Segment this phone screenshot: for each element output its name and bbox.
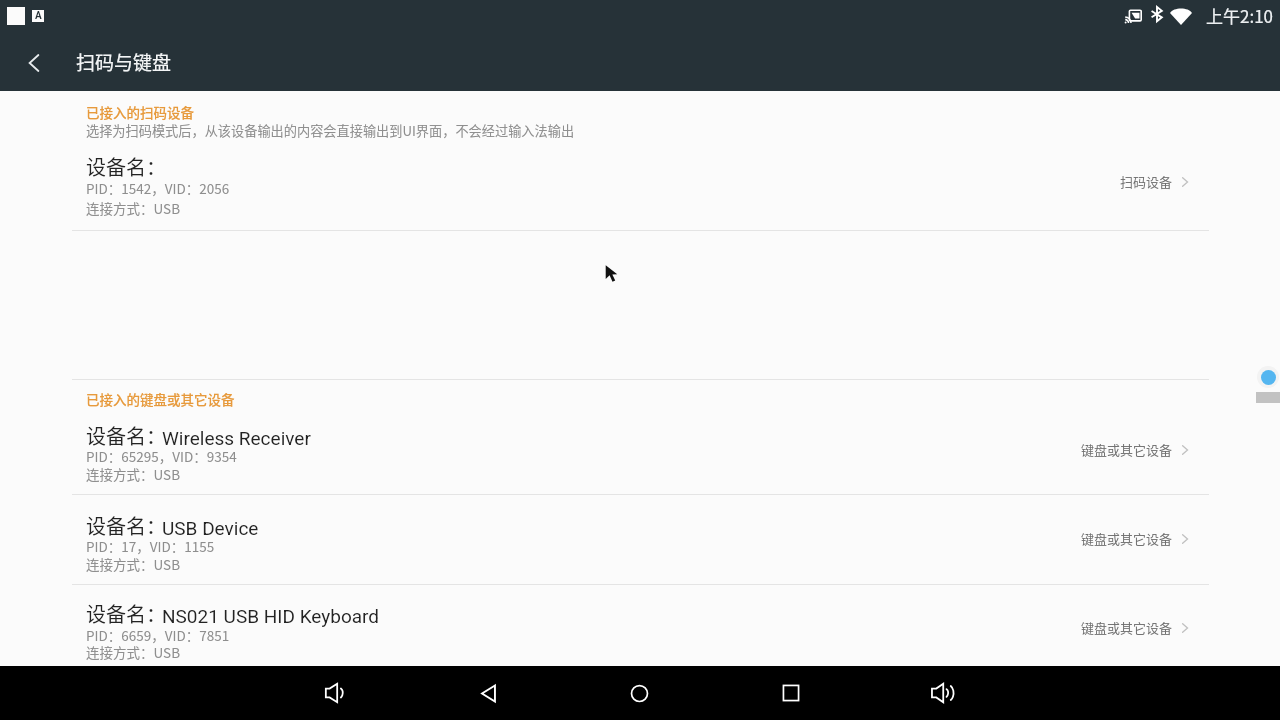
staticText: 扫码与键盘 bbox=[76, 48, 172, 76]
staticText: PID：1542，VID：2056 bbox=[86, 178, 230, 198]
staticText: 扫码设备 bbox=[1120, 172, 1173, 191]
staticText: USB Device bbox=[162, 517, 259, 539]
button[interactable]: 键盘或其它设备 bbox=[1081, 529, 1192, 548]
staticText: 连接方式：USB bbox=[86, 642, 181, 662]
button[interactable]: Home bbox=[603, 666, 675, 720]
staticText: 已接入的扫码设备 bbox=[86, 102, 194, 122]
button[interactable]: 设备名： bbox=[0, 585, 1280, 666]
staticText: 上午2:10 bbox=[1206, 3, 1274, 28]
button[interactable]: 扫码设备 bbox=[1120, 172, 1192, 191]
staticText: 键盘或其它设备 bbox=[1081, 529, 1173, 548]
staticText: 设备名： bbox=[86, 152, 166, 181]
staticText: A bbox=[35, 10, 42, 22]
staticText: 连接方式：USB bbox=[86, 554, 181, 574]
button[interactable]: 设备名： bbox=[0, 410, 1280, 494]
button[interactable]: 设备名： bbox=[0, 141, 1280, 230]
button[interactable]: Floating assistant bbox=[1256, 366, 1280, 388]
staticText: 连接方式：USB bbox=[86, 464, 181, 484]
staticText: PID：65295，VID：9354 bbox=[86, 446, 237, 466]
button[interactable]: Recents bbox=[755, 666, 827, 720]
button[interactable]: Volume down bbox=[299, 666, 371, 720]
staticText: 设备名： bbox=[86, 511, 166, 540]
staticText: 选择为扫码模式后，从该设备输出的内容会直接输出到UI界面，不会经过输入法输出 bbox=[86, 121, 575, 140]
staticText: PID：6659，VID：7851 bbox=[86, 625, 230, 645]
staticText: 键盘或其它设备 bbox=[1081, 440, 1173, 459]
button[interactable]: Volume up bbox=[907, 666, 979, 720]
button[interactable]: 键盘或其它设备 bbox=[1081, 440, 1192, 459]
button[interactable]: 键盘或其它设备 bbox=[1081, 618, 1192, 637]
staticText: 已接入的键盘或其它设备 bbox=[86, 389, 235, 409]
staticText: Wireless Receiver bbox=[162, 427, 311, 449]
staticText: 键盘或其它设备 bbox=[1081, 618, 1173, 637]
button[interactable]: 设备名： bbox=[0, 495, 1280, 584]
button[interactable]: Back bbox=[452, 666, 524, 720]
staticText: 设备名： bbox=[86, 599, 166, 628]
button[interactable]: Back bbox=[8, 37, 60, 89]
staticText: PID：17，VID：1155 bbox=[86, 536, 215, 556]
staticText: 连接方式：USB bbox=[86, 198, 181, 218]
staticText: NS021 USB HID Keyboard bbox=[162, 605, 380, 627]
staticText: 设备名： bbox=[86, 421, 166, 450]
